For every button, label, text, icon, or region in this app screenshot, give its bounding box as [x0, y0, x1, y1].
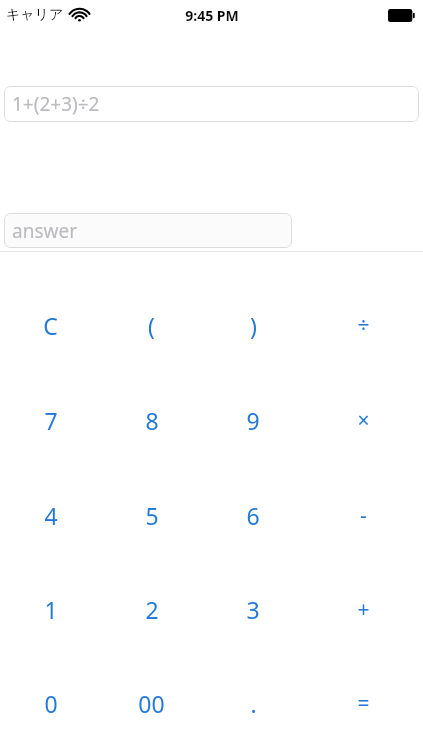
- button[interactable]: 1: [0, 562, 101, 656]
- staticText: ÷: [357, 311, 370, 340]
- button[interactable]: Minus: [304, 468, 423, 562]
- button[interactable]: Close parenthesis: [202, 278, 304, 373]
- button[interactable]: 4: [0, 468, 101, 562]
- staticText: -: [360, 501, 367, 530]
- button[interactable]: Divide: [304, 278, 423, 373]
- staticText: 9: [246, 405, 260, 436]
- staticText: +: [357, 595, 370, 624]
- button[interactable]: Plus: [304, 562, 423, 656]
- staticText: 00: [138, 688, 165, 719]
- button[interactable]: 6: [202, 468, 304, 562]
- staticText: 3: [246, 594, 260, 625]
- staticText: .: [250, 688, 257, 719]
- staticText: ×: [357, 406, 370, 435]
- staticText: answer: [12, 218, 77, 244]
- button[interactable]: 0: [0, 656, 101, 750]
- staticText: 8: [145, 405, 159, 436]
- staticText: 6: [246, 500, 260, 531]
- staticText: 1+(2+3)÷2: [12, 91, 100, 117]
- button[interactable]: 9: [202, 373, 304, 468]
- staticText: 1: [44, 594, 58, 625]
- staticText: 2: [145, 594, 159, 625]
- staticText: ): [250, 310, 257, 341]
- staticText: 4: [44, 500, 58, 531]
- staticText: =: [357, 689, 370, 718]
- staticText: 5: [145, 500, 159, 531]
- button[interactable]: Open parenthesis: [101, 278, 202, 373]
- button[interactable]: answer: [4, 213, 292, 248]
- staticText: 0: [44, 688, 58, 719]
- staticText: (: [148, 310, 155, 341]
- button[interactable]: 2: [101, 562, 202, 656]
- button[interactable]: 1+(2+3)÷2: [4, 86, 419, 122]
- button[interactable]: 8: [101, 373, 202, 468]
- button[interactable]: Equals: [304, 656, 423, 750]
- button[interactable]: Clear: [0, 278, 101, 373]
- button[interactable]: 7: [0, 373, 101, 468]
- button[interactable]: Decimal point: [202, 656, 304, 750]
- button[interactable]: 00: [101, 656, 202, 750]
- button[interactable]: 3: [202, 562, 304, 656]
- button[interactable]: Multiply: [304, 373, 423, 468]
- staticText: C: [43, 310, 58, 341]
- staticText: キャリア: [6, 6, 64, 24]
- staticText: 7: [44, 405, 58, 436]
- staticText: 9:45 PM: [185, 6, 239, 25]
- button[interactable]: 5: [101, 468, 202, 562]
